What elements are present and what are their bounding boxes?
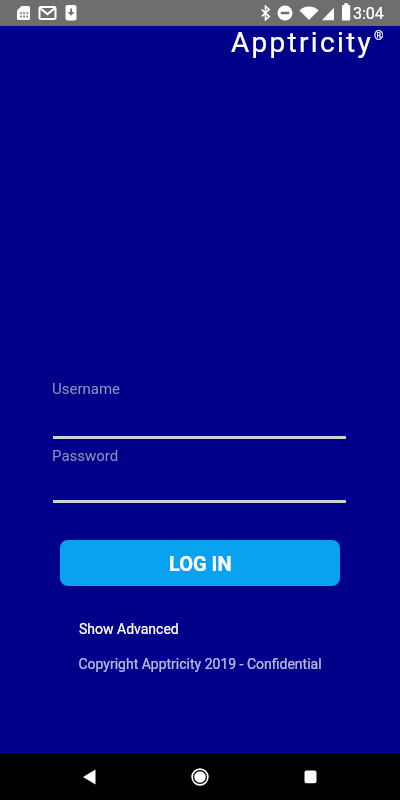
button[interactable]: [0, 753, 134, 800]
button[interactable]: Username: [53, 374, 346, 439]
button[interactable]: LOG IN: [60, 540, 340, 586]
staticText: Copyright Apptricity 2019 - Confidential: [0, 656, 400, 672]
button[interactable]: [134, 753, 267, 800]
staticText: Username: [52, 380, 121, 398]
staticText: 3:04: [353, 4, 384, 23]
button[interactable]: [267, 753, 400, 800]
staticText: LOG IN: [169, 552, 232, 575]
staticText: Show Advanced: [79, 621, 179, 637]
button[interactable]: Password: [53, 439, 346, 503]
staticText: Password: [52, 447, 119, 465]
staticText: ®: [374, 29, 384, 43]
staticText: Apptricity: [231, 26, 374, 59]
button[interactable]: Show Advanced: [69, 613, 189, 645]
